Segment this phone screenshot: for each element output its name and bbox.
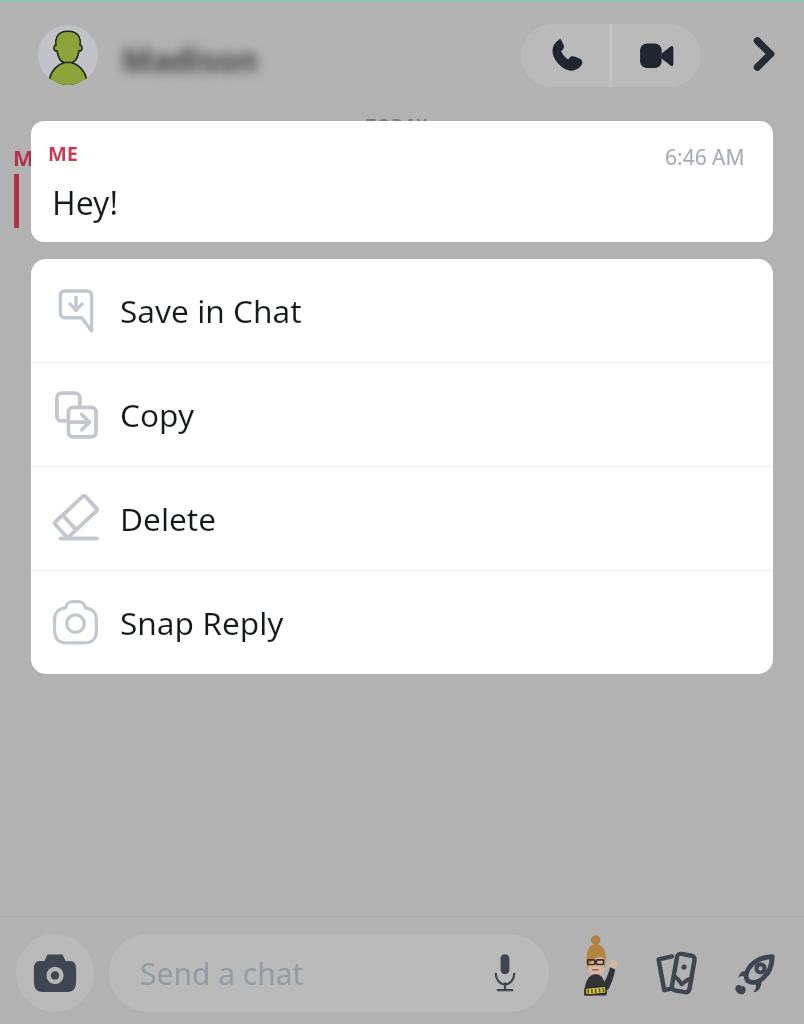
button[interactable]: Snap Reply <box>31 571 773 674</box>
staticText: M <box>13 142 34 172</box>
staticText: 6:46 AM <box>665 143 745 172</box>
button[interactable]: Forward <box>734 24 794 84</box>
staticText: Hey! <box>52 181 119 225</box>
staticText: TODAY <box>366 114 429 137</box>
button[interactable]: Save in Chat <box>31 259 773 362</box>
button[interactable]: Call <box>521 24 610 87</box>
button[interactable]: Delete <box>31 467 773 570</box>
staticText: Snap Reply <box>120 601 284 644</box>
button[interactable]: Stickers <box>646 942 708 1004</box>
button[interactable]: Profile <box>38 25 98 85</box>
staticText: Save in Chat <box>120 289 302 332</box>
staticText: ME <box>48 140 79 167</box>
staticText: Madison <box>122 38 259 82</box>
button[interactable]: Send a chat <box>109 934 549 1012</box>
button[interactable]: ME <box>31 121 773 242</box>
button[interactable]: Copy <box>31 363 773 466</box>
staticText: Copy <box>120 393 194 436</box>
staticText: Delete <box>120 497 217 540</box>
button[interactable]: Video call <box>612 24 701 87</box>
button[interactable]: Camera <box>16 934 94 1012</box>
button[interactable]: Bitmoji sticker <box>565 934 631 1000</box>
button[interactable]: Rocket <box>724 942 786 1004</box>
staticText: Send a chat <box>140 953 304 994</box>
